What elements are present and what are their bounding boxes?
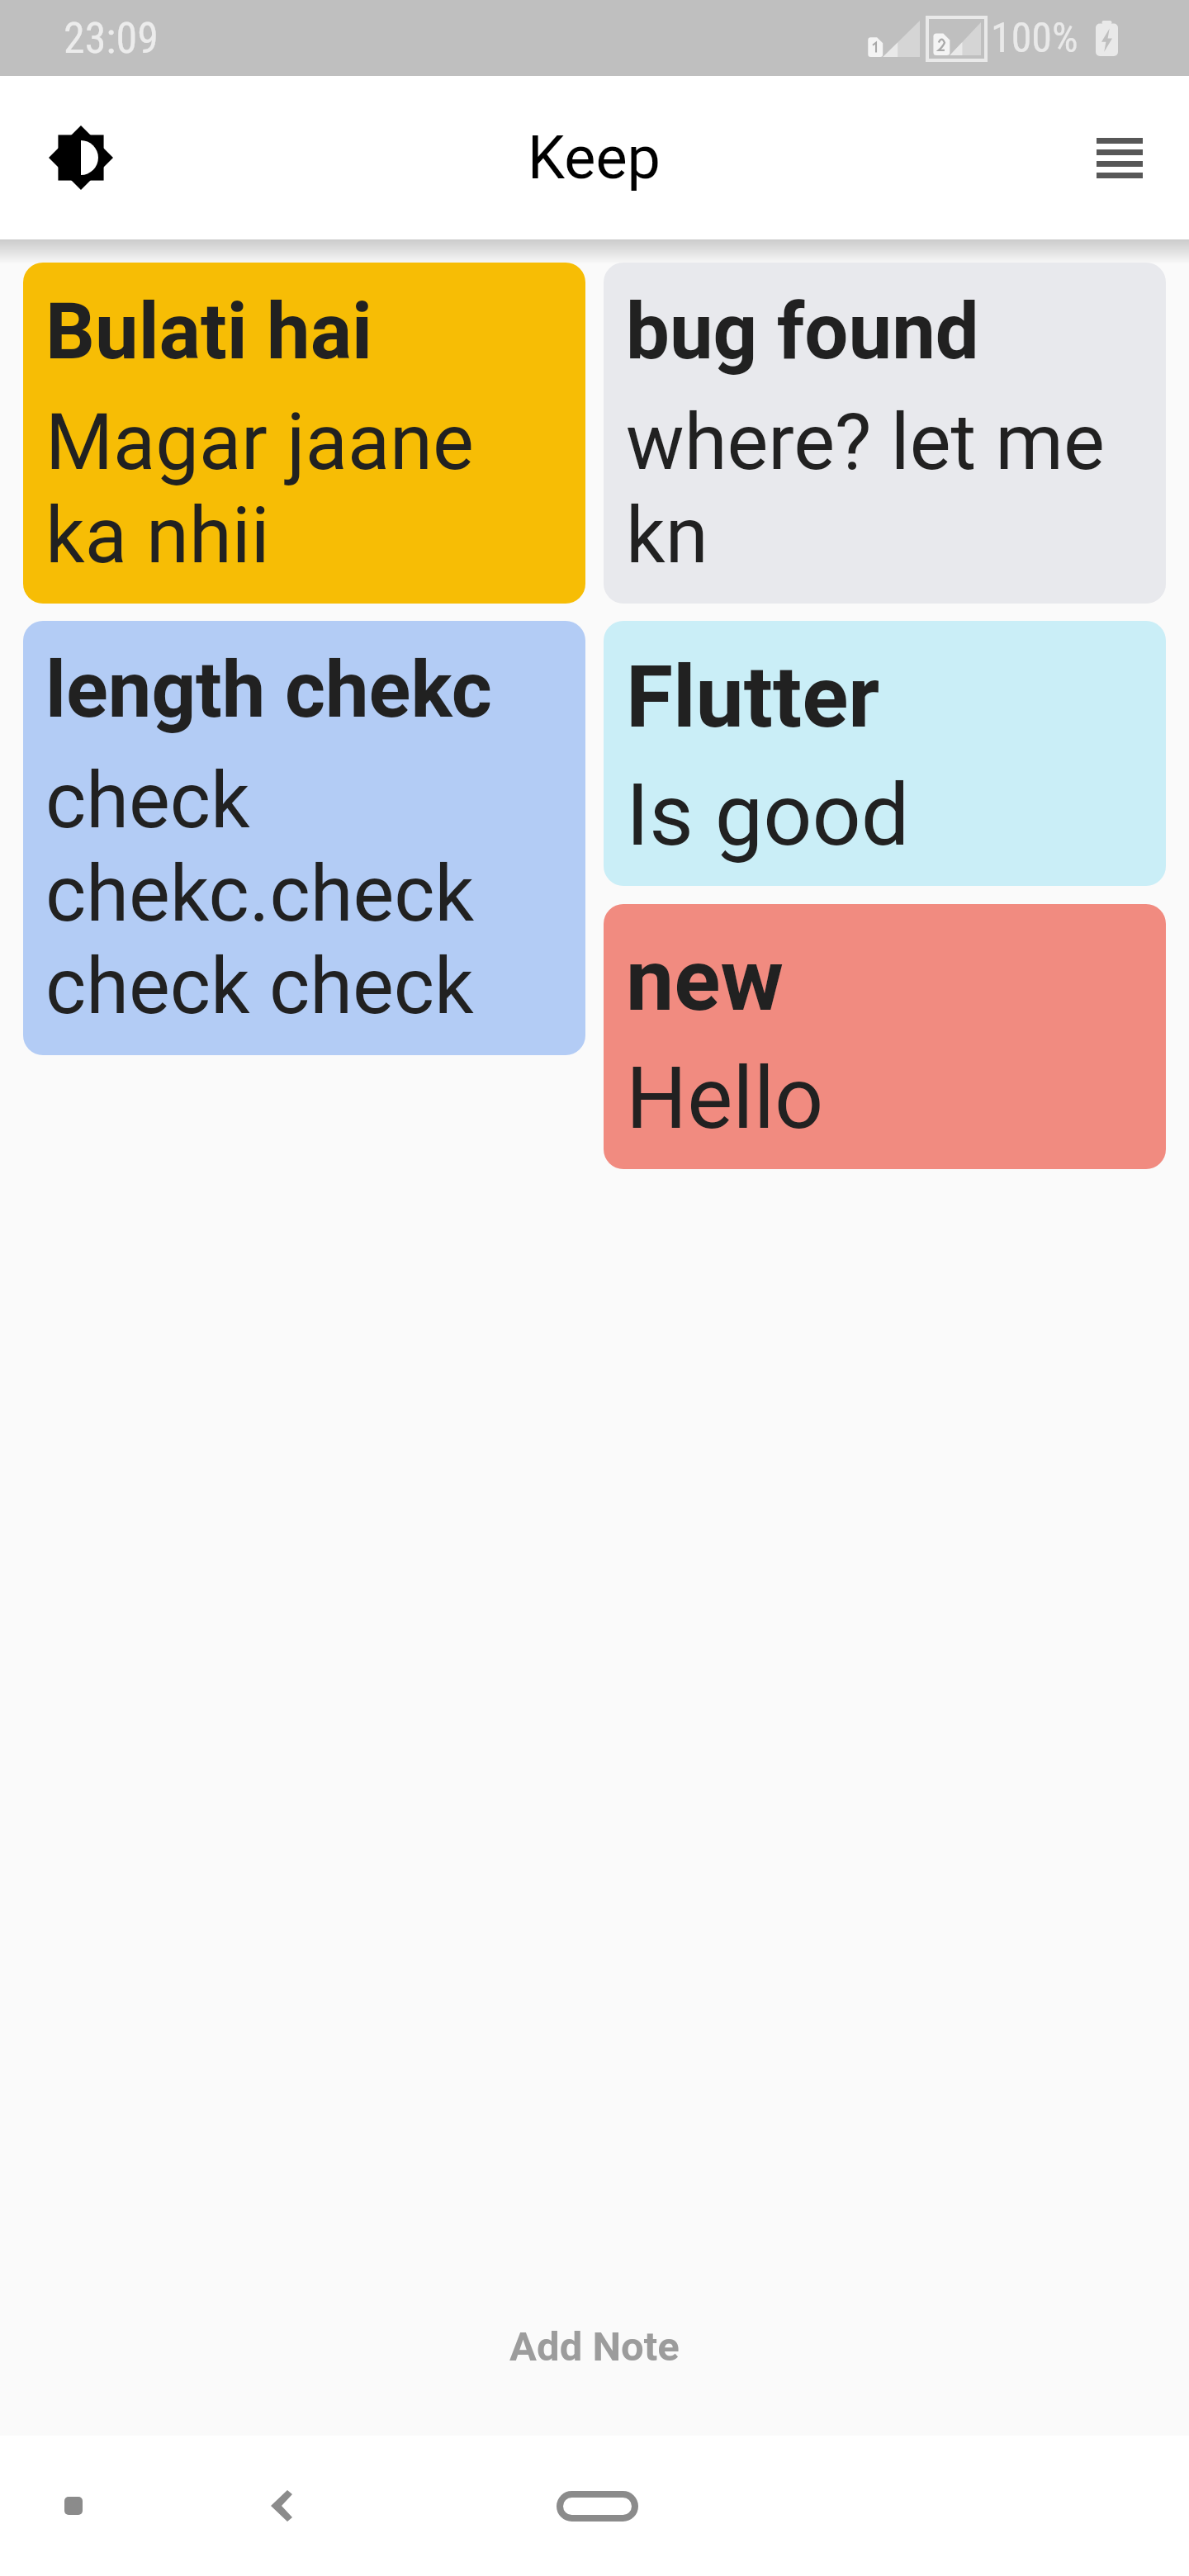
button[interactable]: Recent apps bbox=[32, 2465, 115, 2547]
staticText: Add Note bbox=[509, 2323, 680, 2370]
button[interactable]: length chekc bbox=[23, 621, 585, 1055]
button[interactable]: Add Note bbox=[493, 2315, 696, 2379]
staticText: 100% bbox=[991, 14, 1078, 63]
staticText: Flutter bbox=[626, 647, 880, 748]
staticText: Bulati hai bbox=[45, 286, 373, 377]
staticText: Keep bbox=[528, 123, 661, 192]
staticText: Is good bbox=[626, 765, 910, 866]
staticText: Magar jaane ka nhii bbox=[45, 397, 572, 581]
button[interactable]: new bbox=[604, 904, 1166, 1169]
button[interactable]: bug found bbox=[604, 263, 1166, 604]
staticText: 23:09 bbox=[64, 13, 159, 64]
staticText: length chekc bbox=[45, 645, 492, 736]
staticText: where? let me kn bbox=[626, 397, 1153, 581]
button[interactable]: Flutter bbox=[604, 621, 1166, 886]
button[interactable]: Bulati hai bbox=[23, 263, 585, 604]
staticText: Hello bbox=[626, 1049, 824, 1149]
button[interactable]: Home bbox=[531, 2465, 663, 2547]
staticText: check chekc.check check check bbox=[45, 755, 572, 1032]
button[interactable]: Back bbox=[240, 2465, 323, 2547]
button[interactable]: Toggle dark mode bbox=[31, 107, 131, 208]
staticText: new bbox=[626, 930, 784, 1031]
button[interactable]: Menu bbox=[1069, 107, 1170, 208]
staticText: bug found bbox=[626, 286, 979, 377]
